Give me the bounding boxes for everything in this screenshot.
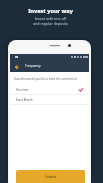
staticText: Invest with one-off and regular deposits	[33, 16, 68, 26]
staticText: Invest your way	[28, 7, 73, 15]
staticText: One time	[16, 88, 29, 92]
button[interactable]: Every Month	[10, 95, 89, 105]
staticText: Continue	[45, 175, 57, 179]
button[interactable]: Back	[13, 63, 20, 70]
staticText: Frequency	[25, 64, 41, 68]
staticText: How often would you like to make this co…	[14, 77, 78, 81]
button[interactable]: One time	[10, 85, 89, 95]
button[interactable]: Continue	[16, 170, 85, 183]
staticText: Every Month	[16, 98, 33, 102]
